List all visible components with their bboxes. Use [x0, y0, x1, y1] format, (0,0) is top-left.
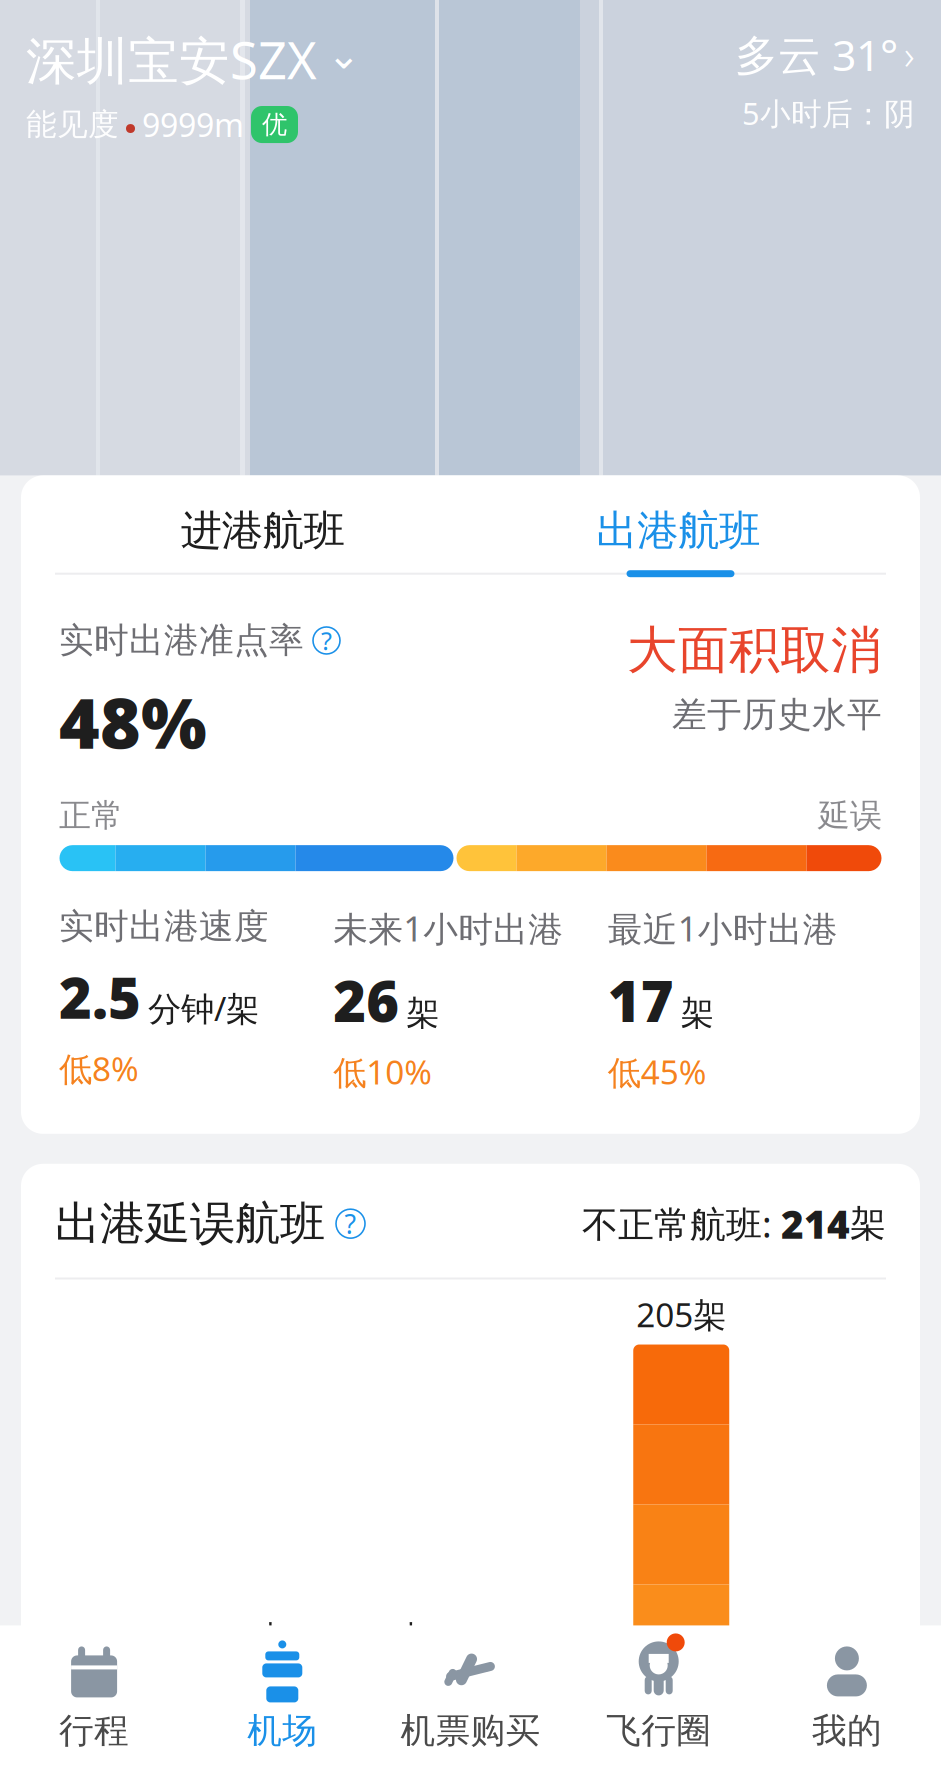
- staticText: ›: [904, 28, 915, 81]
- staticText: ?: [344, 1206, 356, 1241]
- staticText: 17: [608, 963, 674, 1038]
- staticText: 能见度: [26, 106, 119, 143]
- button[interactable]: 我的: [753, 1643, 941, 1752]
- staticText: 未来1小时出港: [333, 905, 563, 951]
- staticText: 10架: [224, 1615, 295, 1659]
- staticText: 214: [781, 1198, 850, 1249]
- staticText: 延误: [818, 796, 882, 835]
- staticText: 0架: [796, 1620, 848, 1664]
- button[interactable]: 进港航班: [55, 491, 470, 570]
- staticText: 架: [681, 993, 714, 1033]
- button[interactable]: 出港延误航班说明: [336, 1209, 365, 1238]
- staticText: 26: [333, 963, 399, 1038]
- staticText: 架: [406, 993, 439, 1033]
- staticText: ?: [321, 624, 332, 657]
- staticText: 48%: [59, 676, 207, 768]
- staticText: 进港航班: [181, 505, 345, 556]
- staticText: 最近1小时出港: [608, 905, 838, 951]
- staticText: 低45%: [608, 1050, 707, 1094]
- staticText: 2.5: [59, 960, 141, 1034]
- staticText: 我的: [812, 1709, 882, 1752]
- button[interactable]: 飞行圈: [565, 1643, 753, 1752]
- staticText: 低10%: [333, 1050, 432, 1094]
- button[interactable]: 多云 31°: [735, 26, 915, 133]
- staticText: 30min-1h: [193, 1709, 326, 1774]
- staticText: 架: [850, 1202, 886, 1246]
- staticText: 机场: [247, 1709, 317, 1752]
- button[interactable]: 机票购买: [376, 1643, 565, 1752]
- staticText: 取消: [646, 1734, 716, 1774]
- button[interactable]: 出港航班: [470, 491, 886, 570]
- staticText: 出港航班: [596, 505, 760, 556]
- staticText: 机票购买: [400, 1709, 540, 1752]
- staticText: 2h+: [510, 1732, 571, 1774]
- staticText: 1h-2h: [354, 1732, 447, 1774]
- staticText: 多云 31°: [735, 26, 898, 83]
- staticText: 行程: [59, 1709, 129, 1752]
- staticText: 实时出港速度: [59, 905, 269, 948]
- staticText: 低8%: [59, 1046, 139, 1090]
- button[interactable]: 行程: [0, 1643, 188, 1752]
- staticText: 分钟/架: [148, 986, 259, 1030]
- staticText: 备降/返航: [763, 1711, 881, 1774]
- staticText: 延误时长: [49, 1734, 189, 1774]
- staticText: 差于历史水平: [672, 693, 882, 736]
- staticText: 优: [262, 109, 287, 140]
- button[interactable]: 机场: [188, 1643, 376, 1752]
- staticText: 飞行圈: [606, 1709, 711, 1752]
- staticText: 10架: [365, 1615, 436, 1659]
- staticText: 205架: [636, 1292, 726, 1336]
- staticText: 9999m: [142, 103, 244, 146]
- staticText: 实时出港准点率: [59, 619, 304, 662]
- button[interactable]: 深圳宝安SZX: [26, 26, 361, 146]
- staticText: 出港延误航班: [55, 1196, 325, 1251]
- staticText: 深圳宝安SZX: [26, 26, 317, 93]
- staticText: ⌄: [327, 32, 361, 77]
- staticText: 大面积取消: [627, 619, 882, 681]
- staticText: 5小时后：阴: [742, 93, 915, 133]
- staticText: 正常: [59, 796, 123, 835]
- staticText: 不正常航班:: [582, 1200, 781, 1248]
